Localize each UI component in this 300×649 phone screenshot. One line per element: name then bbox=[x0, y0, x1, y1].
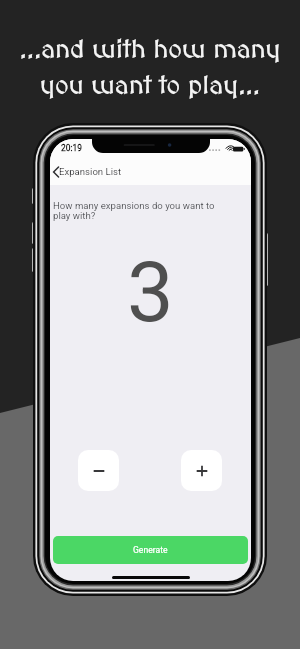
staticText: 3 bbox=[127, 244, 174, 341]
staticText: Expansion List bbox=[59, 166, 122, 177]
staticText: Generate bbox=[133, 545, 168, 555]
staticText: you want to play... bbox=[0, 72, 300, 101]
other: Back bbox=[52, 166, 60, 178]
button[interactable]: Generate bbox=[53, 536, 248, 564]
button[interactable]: Back bbox=[50, 162, 121, 181]
staticText: ...and with how many bbox=[0, 36, 300, 65]
button[interactable]: Decrease bbox=[78, 450, 119, 491]
button[interactable]: Increase bbox=[181, 450, 222, 491]
staticText: How many expansions do you want to play … bbox=[53, 200, 215, 221]
staticText: 20:19 bbox=[61, 143, 82, 153]
